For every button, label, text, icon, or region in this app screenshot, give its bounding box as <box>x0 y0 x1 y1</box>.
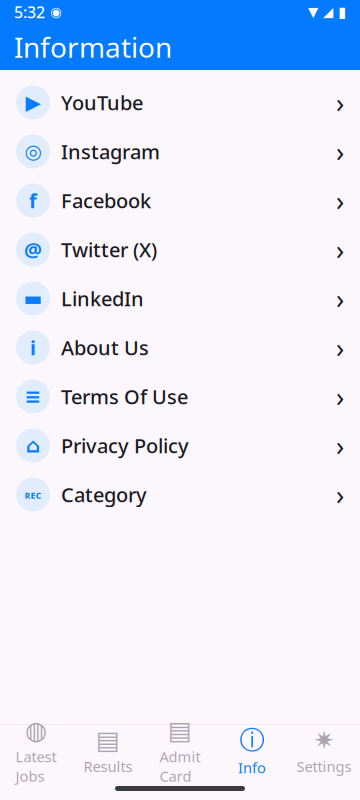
button[interactable]: ◎ <box>0 127 360 176</box>
staticText: Twitter (X) <box>61 236 157 263</box>
staticText: ◎ <box>24 140 41 163</box>
button[interactable]: ▬ <box>0 274 360 323</box>
staticText: ʀᴇᴄ <box>24 487 41 502</box>
staticText: ▤ <box>96 726 120 755</box>
button[interactable]: ◍ <box>0 725 72 777</box>
staticText: ✷ <box>313 726 334 755</box>
button[interactable]: ⌂ <box>0 421 360 470</box>
staticText: ◉ <box>45 4 62 19</box>
staticText: ◍ <box>25 716 47 745</box>
button[interactable]: ▶ <box>0 78 360 127</box>
button[interactable]: i <box>0 323 360 372</box>
staticText: Facebook <box>61 187 151 214</box>
staticText: › <box>336 134 344 169</box>
staticText: Results <box>83 757 132 776</box>
staticText: ◢ <box>318 4 333 19</box>
staticText: › <box>336 281 344 316</box>
staticText: › <box>336 85 344 120</box>
staticText: ≡ <box>24 385 41 408</box>
staticText: Information <box>14 28 172 66</box>
button[interactable]: @ <box>0 225 360 274</box>
staticText: f <box>29 187 37 214</box>
staticText: @ <box>24 236 42 263</box>
staticText: Category <box>61 481 147 508</box>
staticText: ▤ <box>168 716 192 745</box>
staticText: ⓘ <box>239 725 264 756</box>
staticText: ▼ <box>308 4 318 19</box>
staticText: i <box>30 334 36 361</box>
staticText: Info <box>238 758 266 777</box>
staticText: 5:32 <box>14 1 45 23</box>
staticText: Privacy Policy <box>61 432 189 459</box>
staticText: › <box>336 232 344 267</box>
button[interactable]: ✷ <box>288 725 360 777</box>
staticText: ▮ <box>333 4 346 20</box>
staticText: ▬ <box>23 287 42 310</box>
staticText: › <box>336 477 344 512</box>
button[interactable]: ≡ <box>0 372 360 421</box>
staticText: LinkedIn <box>61 285 144 312</box>
staticText: YouTube <box>61 89 143 116</box>
staticText: Admit Card <box>159 747 200 786</box>
staticText: Terms Of Use <box>61 383 188 410</box>
staticText: Settings <box>296 757 351 776</box>
button[interactable]: ▤ <box>144 725 216 777</box>
button[interactable]: ⓘ <box>216 725 288 777</box>
button[interactable]: ▤ <box>72 725 144 777</box>
staticText: About Us <box>61 334 149 361</box>
staticText: › <box>336 183 344 218</box>
staticText: › <box>336 330 344 365</box>
staticText: › <box>336 379 344 414</box>
staticText: › <box>336 428 344 463</box>
staticText: ▶ <box>25 91 40 114</box>
staticText: Latest Jobs <box>15 747 56 786</box>
staticText: ⌂ <box>26 434 40 457</box>
staticText: Instagram <box>61 138 160 165</box>
button[interactable]: ʀᴇᴄ <box>0 470 360 519</box>
button[interactable]: f <box>0 176 360 225</box>
